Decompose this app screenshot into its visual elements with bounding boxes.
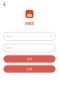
- button[interactable]: 登录: [3, 55, 55, 63]
- staticText: 注册: [26, 67, 32, 71]
- button[interactable]: 注册: [3, 65, 55, 73]
- button[interactable]: 验证码: [3, 44, 55, 52]
- staticText: 验证码: [5, 47, 11, 49]
- button[interactable]: 手机号: [3, 32, 55, 41]
- button[interactable]: Back: [0, 0, 9, 9]
- staticText: 手机号: [5, 35, 11, 38]
- staticText: 登录: [26, 57, 32, 61]
- staticText: 闪送宝: [25, 21, 34, 26]
